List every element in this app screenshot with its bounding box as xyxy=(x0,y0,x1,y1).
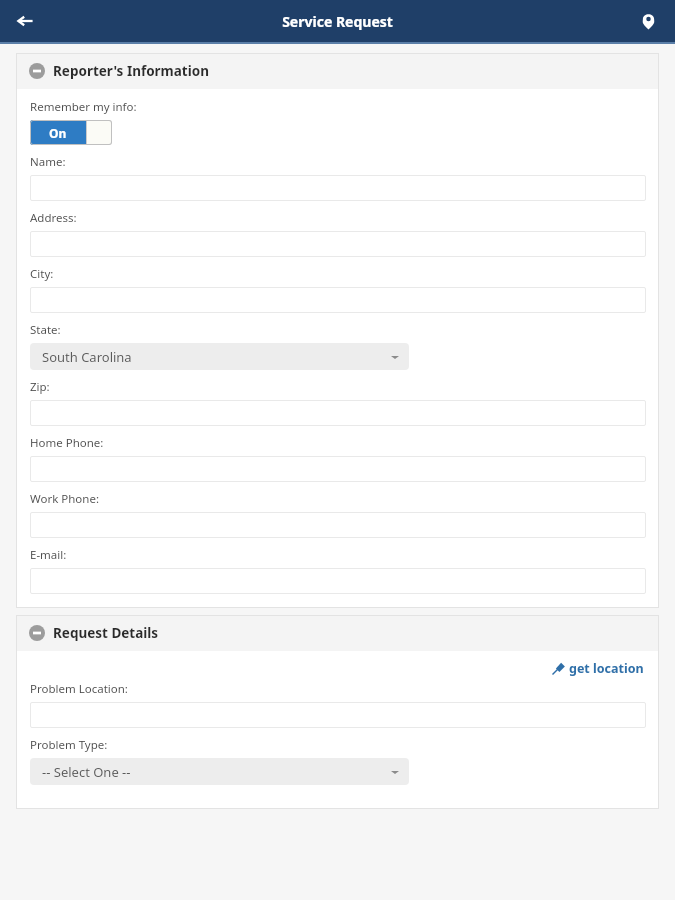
staticText: Problem Type: xyxy=(30,737,108,753)
button[interactable] xyxy=(30,231,646,257)
staticText: On xyxy=(49,125,67,141)
button[interactable] xyxy=(30,456,646,482)
staticText: Home Phone: xyxy=(30,435,104,451)
staticText: Problem Location: xyxy=(30,681,128,697)
staticText: Work Phone: xyxy=(30,491,99,507)
staticText: Request Details xyxy=(53,624,159,642)
button[interactable] xyxy=(30,287,646,313)
button[interactable]: Back xyxy=(6,2,44,40)
staticText: Reporter's Information xyxy=(53,62,209,80)
button[interactable] xyxy=(30,175,646,201)
button[interactable]: Remember my info toggle, On xyxy=(30,120,112,145)
staticText: get location xyxy=(569,660,644,677)
button[interactable] xyxy=(30,568,646,594)
staticText: Address: xyxy=(30,210,77,226)
staticText: City: xyxy=(30,266,54,282)
button[interactable]: Map location xyxy=(629,2,667,40)
staticText: State: xyxy=(30,322,61,338)
staticText: Service Request xyxy=(282,12,393,31)
staticText: E-mail: xyxy=(30,547,67,563)
staticText: South Carolina xyxy=(42,348,132,366)
staticText: -- Select One -- xyxy=(42,763,131,781)
staticText: Remember my info: xyxy=(30,99,137,115)
button[interactable]: South Carolina xyxy=(30,343,409,370)
button[interactable]: Reporter's Information xyxy=(16,53,659,89)
button[interactable] xyxy=(30,512,646,538)
staticText: Name: xyxy=(30,154,66,170)
button[interactable] xyxy=(30,702,646,728)
button[interactable]: -- Select One -- xyxy=(30,758,409,785)
button[interactable]: get location xyxy=(550,658,646,679)
button[interactable] xyxy=(30,400,646,426)
staticText: Zip: xyxy=(30,379,50,395)
button[interactable]: Request Details xyxy=(16,615,659,651)
